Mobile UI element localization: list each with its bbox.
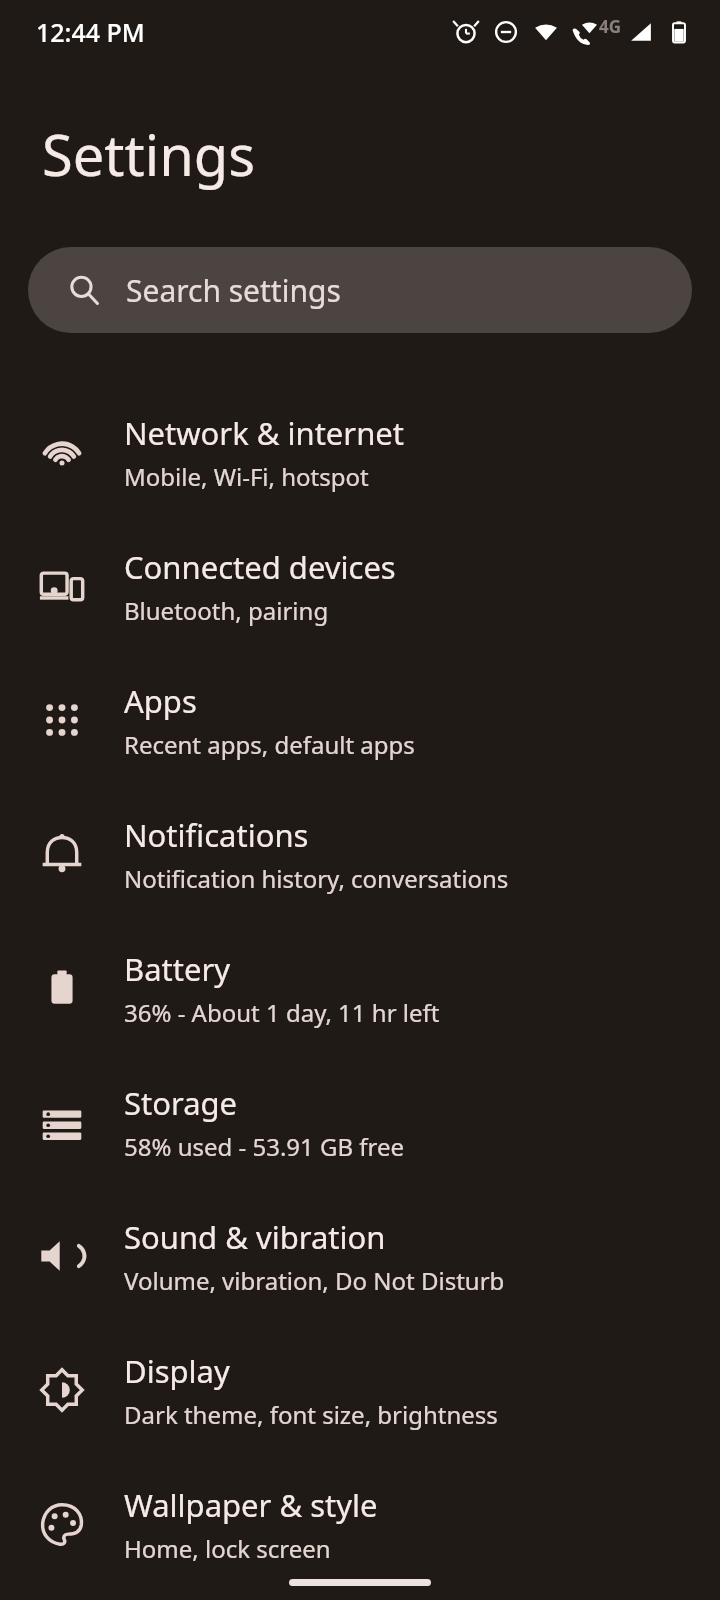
staticText: Recent apps, default apps	[124, 728, 415, 761]
button[interactable]: Display	[0, 1323, 720, 1457]
button[interactable]: Apps	[0, 653, 720, 787]
button[interactable]: Wallpaper & style	[0, 1457, 720, 1591]
staticText: Mobile, Wi-Fi, hotspot	[124, 460, 369, 493]
staticText: Network & internet	[124, 412, 404, 454]
button[interactable]: Search settings	[28, 247, 692, 333]
staticText: Dark theme, font size, brightness	[124, 1398, 498, 1431]
staticText: Apps	[124, 680, 197, 722]
staticText: 58% used - 53.91 GB free	[124, 1130, 405, 1163]
button[interactable]: Connected devices	[0, 519, 720, 653]
staticText: Bluetooth, pairing	[124, 594, 329, 627]
staticText: Battery	[124, 948, 231, 990]
button[interactable]: Network & internet	[0, 385, 720, 519]
staticText: 12:44 PM	[36, 15, 145, 49]
staticText: Notifications	[124, 814, 309, 856]
button[interactable]: Sound & vibration	[0, 1189, 720, 1323]
button[interactable]: Storage	[0, 1055, 720, 1189]
staticText: Storage	[124, 1082, 238, 1124]
staticText: 36% - About 1 day, 11 hr left	[124, 996, 440, 1029]
staticText: Wallpaper & style	[124, 1484, 378, 1526]
staticText: Settings	[42, 116, 256, 192]
staticText: Display	[124, 1350, 230, 1392]
staticText: Sound & vibration	[124, 1216, 386, 1258]
button[interactable]: Notifications	[0, 787, 720, 921]
staticText: Notification history, conversations	[124, 862, 509, 895]
staticText: Volume, vibration, Do Not Disturb	[124, 1264, 505, 1297]
staticText: Search settings	[126, 270, 341, 311]
staticText: Home, lock screen	[124, 1532, 331, 1565]
button[interactable]: Battery	[0, 921, 720, 1055]
staticText: 4G	[599, 15, 622, 38]
staticText: Connected devices	[124, 546, 396, 588]
